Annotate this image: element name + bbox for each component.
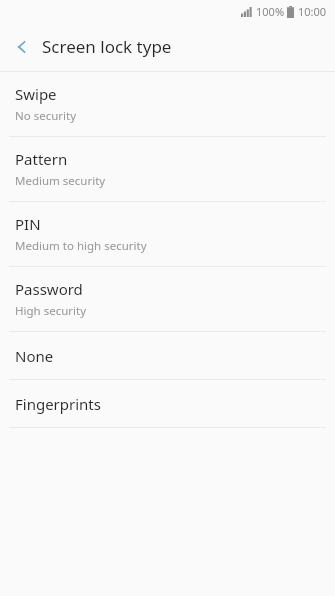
button[interactable]: PIN xyxy=(0,202,335,266)
staticText: No security xyxy=(15,108,77,124)
button[interactable]: Fingerprints xyxy=(0,380,335,427)
staticText: Screen lock type xyxy=(42,35,172,58)
staticText: Pattern xyxy=(15,149,68,169)
staticText: PIN xyxy=(15,214,41,234)
staticText: 10:00 xyxy=(298,4,327,19)
staticText: Fingerprints xyxy=(15,394,101,414)
staticText: Medium to high security xyxy=(15,238,147,254)
staticText: High security xyxy=(15,303,87,319)
button[interactable]: Pattern xyxy=(0,137,335,201)
button[interactable]: Password xyxy=(0,267,335,331)
staticText: Medium security xyxy=(15,173,106,189)
button[interactable]: Navigate up xyxy=(6,31,38,63)
button[interactable]: None xyxy=(0,332,335,379)
button[interactable]: Swipe xyxy=(0,72,335,136)
staticText: Password xyxy=(15,279,83,299)
staticText: None xyxy=(15,346,54,366)
staticText: Swipe xyxy=(15,84,57,104)
staticText: 100% xyxy=(256,4,285,19)
